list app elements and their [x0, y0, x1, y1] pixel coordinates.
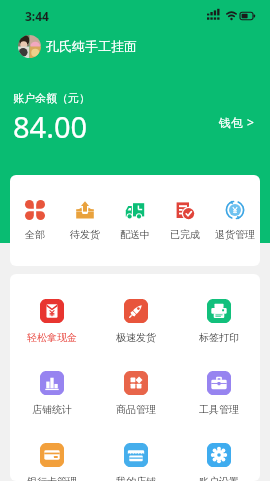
staticText: 退货管理 [215, 228, 255, 241]
button[interactable]: 已完成 [160, 200, 210, 241]
staticText: > [247, 114, 254, 130]
staticText: 孔氏纯手工挂面 [46, 38, 137, 54]
button[interactable]: 我的店铺 [94, 443, 177, 481]
button[interactable]: 店铺统计 [10, 371, 94, 416]
button[interactable]: 工具管理 [177, 371, 260, 416]
staticText: 工具管理 [199, 403, 239, 416]
button[interactable]: 商品管理 [94, 371, 177, 416]
staticText: 银行卡管理 [27, 475, 77, 481]
staticText: 极速发货 [116, 331, 156, 344]
staticText: 配送中 [120, 228, 150, 241]
button[interactable]: 银行卡管理 [10, 443, 94, 481]
staticText: 账户余额（元） [13, 91, 90, 105]
staticText: 全部 [25, 228, 45, 241]
staticText: 84.00 [13, 107, 88, 146]
staticText: 3:44 [25, 8, 49, 24]
staticText: 我的店铺 [116, 475, 156, 481]
staticText: 账户设置 [199, 475, 239, 481]
staticText: 钱包 [219, 115, 243, 130]
button[interactable]: 钱包 [219, 114, 254, 130]
staticText: 标签打印 [199, 331, 239, 344]
button[interactable]: 轻松拿现金 [10, 299, 94, 344]
button[interactable]: 极速发货 [94, 299, 177, 344]
staticText: 店铺统计 [32, 403, 72, 416]
button[interactable]: 退货管理 [210, 200, 260, 241]
button[interactable]: 全部 [10, 200, 60, 241]
staticText: 轻松拿现金 [27, 331, 77, 344]
button[interactable]: 配送中 [110, 200, 160, 241]
button[interactable]: 标签打印 [177, 299, 260, 344]
staticText: 待发货 [70, 228, 100, 241]
button[interactable]: 账户设置 [177, 443, 260, 481]
staticText: 已完成 [170, 228, 200, 241]
staticText: 商品管理 [116, 403, 156, 416]
button[interactable]: 待发货 [60, 200, 110, 241]
